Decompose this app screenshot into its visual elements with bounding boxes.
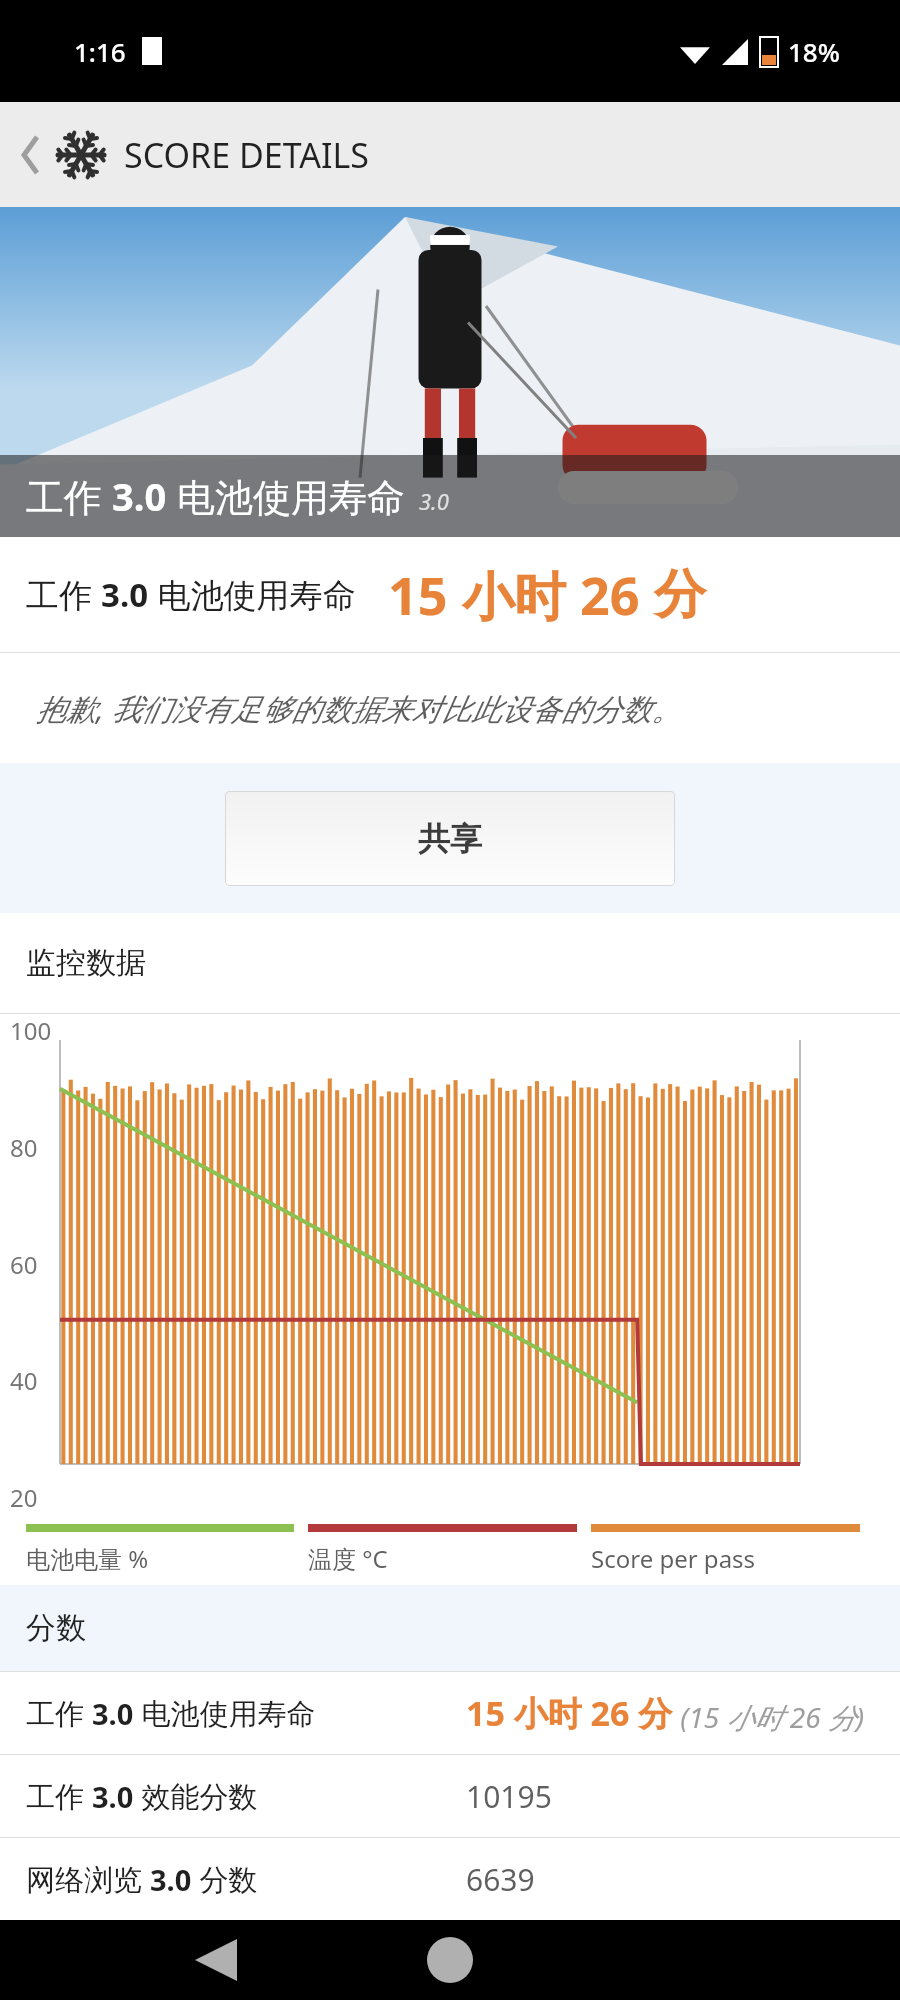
staticText: 3.0 (112, 470, 167, 522)
staticText: 工作 (26, 572, 101, 617)
staticText: 18% (788, 34, 840, 69)
button[interactable]: 网络浏览 (0, 1838, 900, 1920)
staticText: 温度 °C (308, 1542, 388, 1575)
staticText: 分 (654, 562, 706, 628)
staticText: 3.0 (92, 1777, 134, 1816)
staticText: 电池使用寿命 (167, 470, 405, 522)
staticText: 工作 (26, 1776, 92, 1816)
staticText: 60 (10, 1248, 38, 1281)
staticText: 3.0 (419, 486, 449, 516)
button[interactable]: Home (427, 1937, 473, 1983)
button[interactable]: Back (195, 1939, 237, 1981)
staticText: 工作 (26, 1693, 92, 1733)
staticText: 40 (10, 1364, 38, 1397)
staticText: 3.0 (150, 1860, 192, 1899)
button[interactable]: 工作 (0, 1755, 900, 1837)
staticText: 3.0 (101, 572, 149, 617)
staticText: 小时 (462, 559, 580, 630)
staticText: 26 (580, 559, 654, 630)
staticText: 20 (10, 1481, 38, 1514)
staticText: 网络浏览 (26, 1859, 150, 1899)
staticText: 100 (10, 1014, 52, 1047)
staticText: 6639 (466, 1859, 535, 1900)
staticText: 电池电量 % (26, 1542, 149, 1575)
staticText: 10195 (466, 1776, 552, 1817)
staticText: 抱歉, 我们没有足够的数据来对比此设备的分数。 (36, 688, 682, 729)
staticText: Score per pass (591, 1542, 756, 1575)
button[interactable]: Back (8, 131, 56, 179)
staticText: 15 小时 26 分 (466, 1690, 673, 1736)
staticText: 监控数据 (26, 944, 146, 982)
staticText: 分数 (26, 1609, 86, 1647)
staticText: 共享 (418, 819, 482, 859)
button[interactable]: 工作 (0, 1672, 900, 1754)
staticText: 分数 (192, 1859, 258, 1899)
staticText: 15 (388, 559, 462, 630)
staticText: 3.0 (92, 1694, 134, 1733)
staticText: (15 小时 26 分) (673, 1698, 865, 1736)
staticText: 80 (10, 1131, 38, 1164)
staticText: 电池使用寿命 (134, 1693, 316, 1733)
staticText: SCORE DETAILS (124, 132, 369, 178)
staticText: 电池使用寿命 (149, 572, 356, 617)
staticText: 效能分数 (134, 1776, 258, 1816)
button[interactable]: 共享 (225, 791, 675, 886)
staticText: 1:16 (74, 34, 126, 69)
staticText: 工作 (26, 470, 112, 522)
